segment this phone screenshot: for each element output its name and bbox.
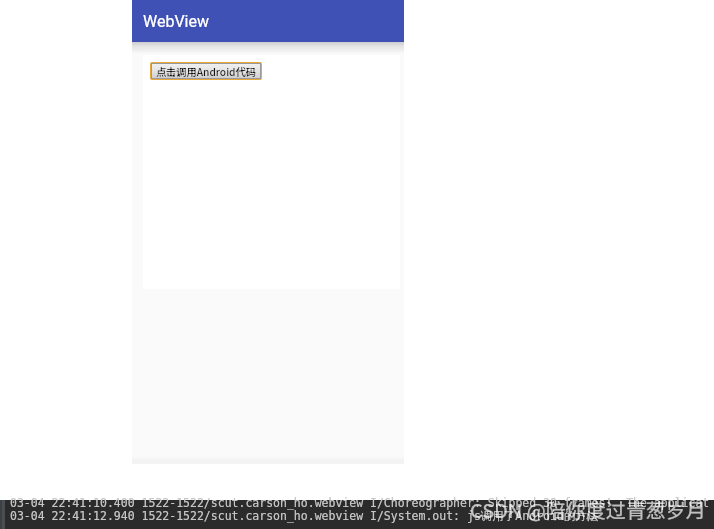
staticText: WebView — [143, 12, 210, 31]
staticText: CSDN @陪你度过青葱岁月 — [470, 495, 706, 524]
staticText: 03-04 22:41:12.940 1522-1522/scut.carson… — [10, 509, 599, 523]
button[interactable]: 点击调用Android代码 — [152, 64, 260, 78]
button[interactable]: WebView app bar — [132, 0, 404, 42]
staticText: 点击调用Android代码 — [156, 64, 256, 78]
staticText: 03-04 22:41:10.400 1522-1522/scut.carson… — [10, 496, 710, 509]
